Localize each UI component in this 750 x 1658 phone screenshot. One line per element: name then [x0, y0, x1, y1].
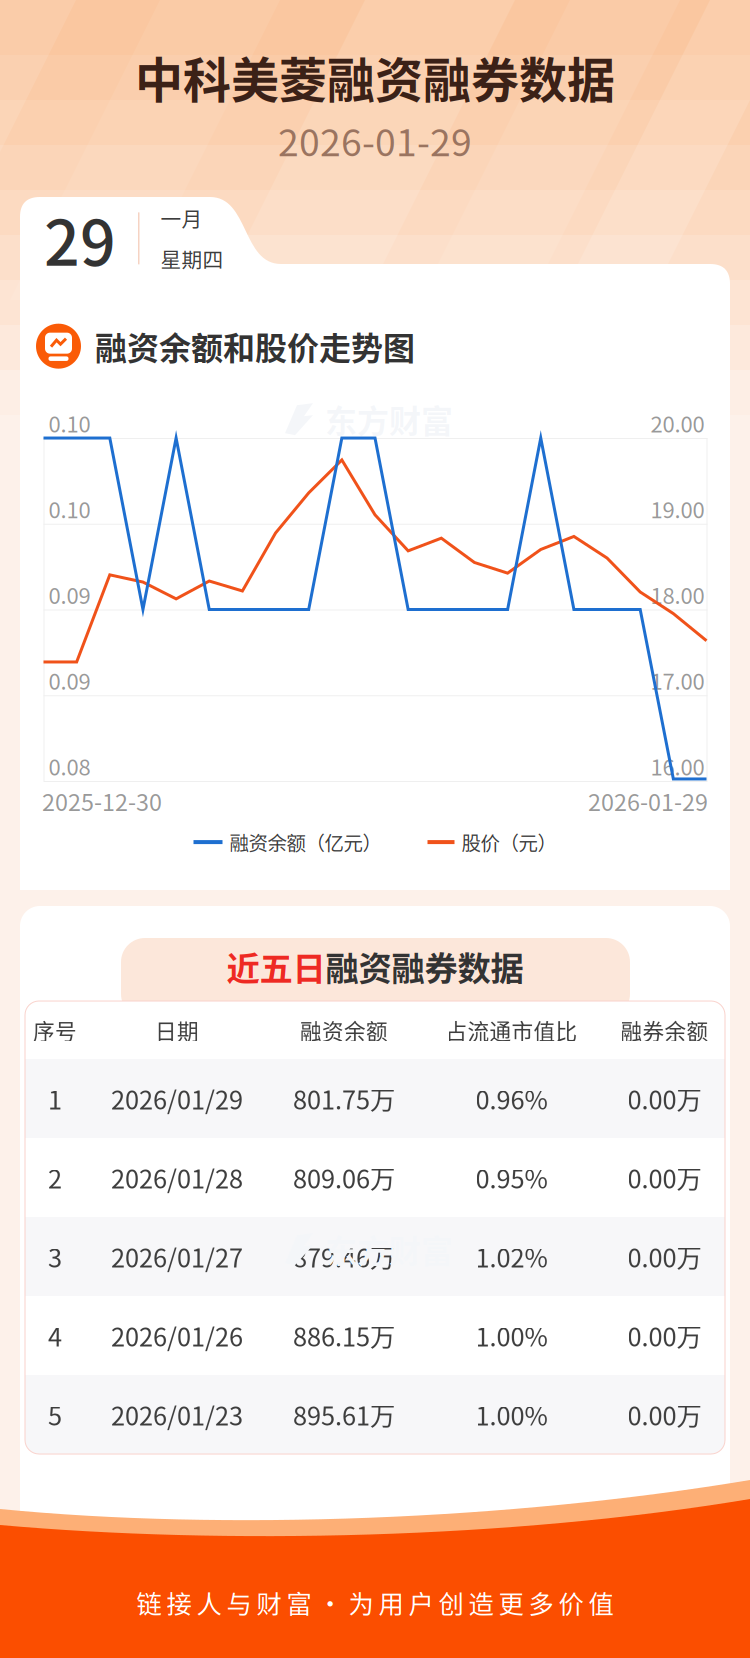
staticText: 融资余额和股价走势图: [95, 323, 415, 369]
staticText: 2026/01/29: [111, 1080, 243, 1117]
staticText: 0.00万: [627, 1238, 701, 1275]
staticText: 895.61万: [293, 1396, 395, 1433]
staticText: 18.00: [650, 578, 704, 610]
staticText: 序号: [33, 1014, 77, 1046]
staticText: 融资融券数据: [325, 942, 523, 990]
staticText: 日期: [155, 1014, 199, 1046]
staticText: 19.00: [650, 493, 704, 525]
staticText: 链 接 人 与 财 富 · 为 用 户 创 造 更 多 价 值: [136, 1584, 613, 1621]
staticText: 5: [48, 1396, 62, 1433]
staticText: 星期四: [160, 244, 223, 274]
staticText: 2026-01-29: [588, 784, 708, 818]
staticText: 4: [48, 1317, 62, 1354]
staticText: 0.00万: [627, 1317, 701, 1354]
staticText: 股价（元）: [461, 828, 556, 856]
staticText: 0.09: [48, 664, 90, 696]
staticText: 东方财富: [325, 1226, 453, 1272]
staticText: 0.10: [48, 407, 90, 439]
staticText: 2026/01/26: [111, 1317, 243, 1354]
staticText: 中科美菱融资融券数据: [135, 42, 615, 111]
staticText: 0.00万: [627, 1396, 701, 1433]
staticText: 0.08: [48, 750, 90, 782]
staticText: 1.00%: [475, 1317, 547, 1354]
staticText: 2026/01/27: [111, 1238, 243, 1275]
staticText: 1.02%: [475, 1238, 547, 1275]
staticText: 2026/01/23: [111, 1396, 243, 1433]
staticText: 东方财富: [325, 396, 453, 442]
staticText: 17.00: [650, 664, 704, 696]
staticText: 融券余额: [620, 1014, 708, 1046]
staticText: 2026-01-29: [278, 113, 472, 167]
staticText: 占流通市值比: [445, 1014, 577, 1046]
staticText: 融资余额: [300, 1014, 388, 1046]
staticText: 1: [48, 1080, 62, 1117]
staticText: 0.96%: [475, 1080, 547, 1117]
staticText: 0.10: [48, 493, 90, 525]
staticText: 886.15万: [293, 1317, 395, 1354]
staticText: 0.00万: [627, 1080, 701, 1117]
staticText: 2: [48, 1159, 62, 1196]
staticText: 0.09: [48, 578, 90, 610]
staticText: 融资余额（亿元）: [229, 828, 381, 856]
staticText: 1.00%: [475, 1396, 547, 1433]
staticText: 2025-12-30: [42, 784, 162, 818]
staticText: 0.95%: [475, 1159, 547, 1196]
staticText: 3: [48, 1238, 62, 1275]
staticText: 16.00: [650, 750, 704, 782]
staticText: 近五日: [226, 942, 325, 990]
staticText: 一月: [160, 203, 202, 233]
staticText: 0.00万: [627, 1159, 701, 1196]
staticText: 809.06万: [293, 1159, 395, 1196]
staticText: 879.46万: [293, 1238, 395, 1275]
staticText: 2026/01/28: [111, 1159, 243, 1196]
staticText: 20.00: [650, 407, 704, 439]
staticText: 801.75万: [293, 1080, 395, 1117]
staticText: 29: [44, 193, 116, 284]
